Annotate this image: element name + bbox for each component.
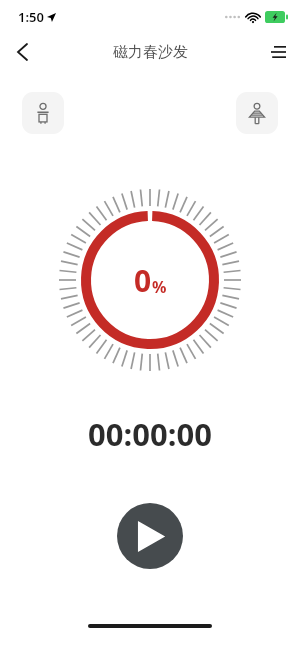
staticText: 1:50	[18, 8, 44, 26]
button[interactable]: Menu	[256, 34, 300, 70]
button[interactable]: Back	[0, 34, 44, 70]
staticText: 磁力春沙发	[113, 43, 188, 62]
staticText: 00:00:00	[88, 413, 212, 455]
staticText: 0	[134, 260, 152, 301]
button[interactable]: Female body shape	[236, 92, 278, 134]
button[interactable]: Male body shape	[22, 92, 64, 134]
staticText: %	[152, 276, 167, 298]
button[interactable]: Start	[117, 503, 183, 569]
